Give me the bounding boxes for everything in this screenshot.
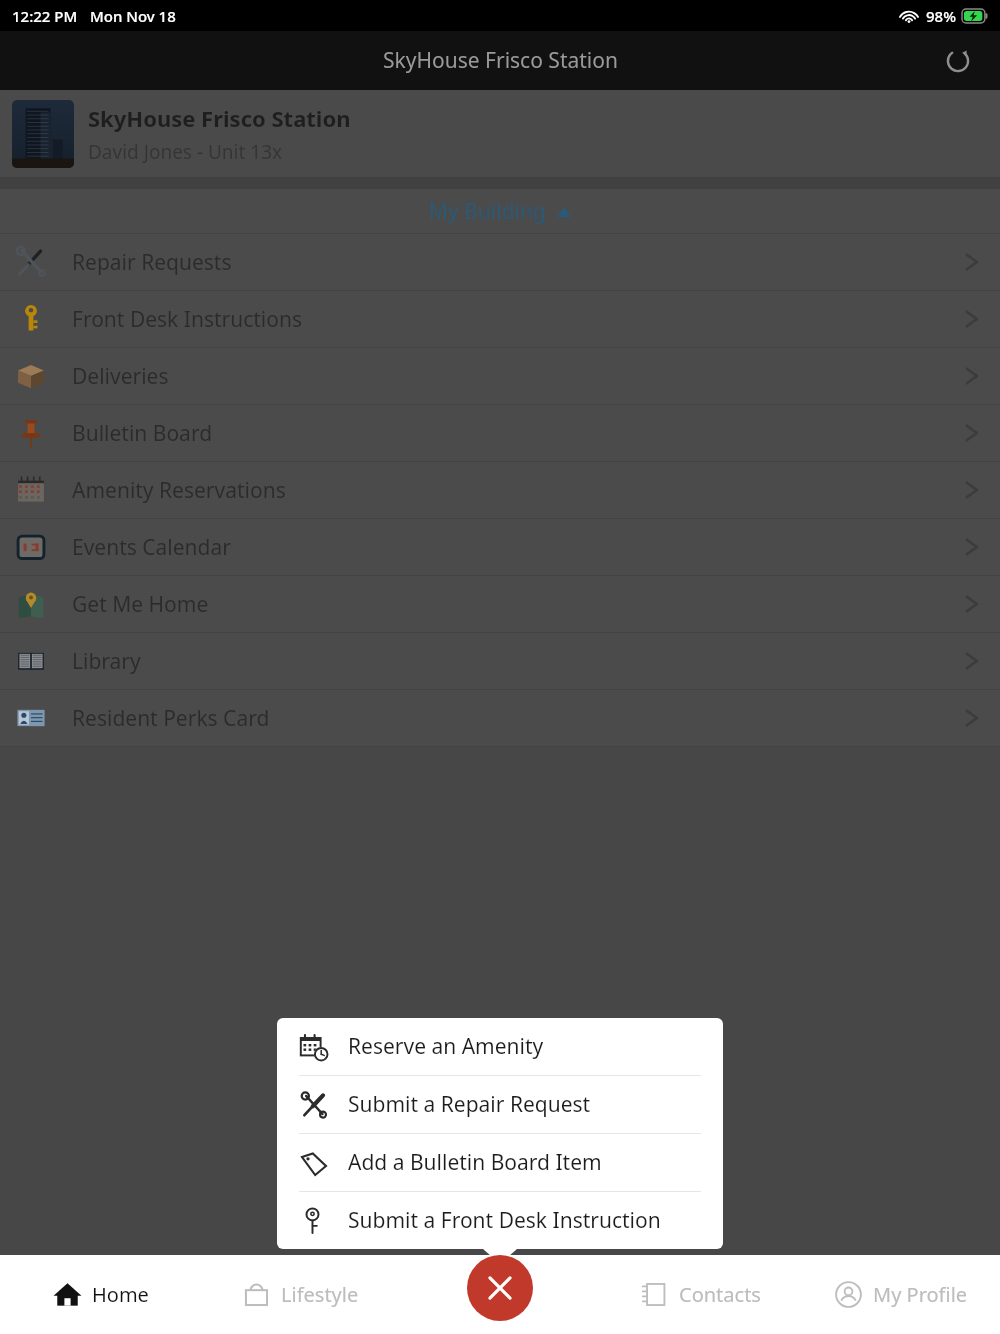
button[interactable]: Reserve an Amenity (277, 1018, 723, 1076)
button[interactable]: Resident Perks Card (0, 690, 1000, 747)
button[interactable]: Bulletin Board (0, 405, 1000, 462)
button[interactable]: Events Calendar (0, 519, 1000, 576)
button[interactable]: Library (0, 633, 1000, 690)
staticText: SkyHouse Frisco Station (88, 103, 351, 133)
staticText: David Jones - Unit 13x (88, 139, 283, 165)
staticText: Home (92, 1281, 149, 1308)
staticText: Add a Bulletin Board Item (348, 1148, 602, 1177)
staticText: Submit a Front Desk Instruction (348, 1206, 661, 1235)
button[interactable]: Contacts (600, 1255, 800, 1334)
staticText: Front Desk Instructions (72, 305, 302, 334)
button[interactable]: Get Me Home (0, 576, 1000, 633)
staticText: Mon Nov 18 (90, 6, 176, 26)
staticText: Library (72, 647, 141, 676)
button[interactable]: Close menu (467, 1255, 533, 1321)
staticText: My Building (429, 197, 546, 226)
staticText: Resident Perks Card (72, 704, 270, 733)
button[interactable]: Repair Requests (0, 234, 1000, 291)
staticText: Events Calendar (72, 533, 231, 562)
staticText: Get Me Home (72, 590, 209, 619)
button[interactable]: SkyHouse Frisco Station (0, 90, 1000, 177)
staticText: SkyHouse Frisco Station (383, 46, 618, 75)
button[interactable]: Lifestyle (200, 1255, 400, 1334)
staticText: Bulletin Board (72, 419, 213, 448)
staticText: Amenity Reservations (72, 476, 286, 505)
staticText: Deliveries (72, 362, 169, 391)
button[interactable]: Submit a Repair Request (277, 1076, 723, 1134)
staticText: Lifestyle (281, 1281, 359, 1308)
staticText: Submit a Repair Request (348, 1090, 591, 1119)
button[interactable]: Refresh (938, 41, 978, 81)
staticText: 12:22 PM (12, 6, 78, 26)
staticText: Repair Requests (72, 248, 232, 277)
button[interactable]: My Building (0, 189, 1000, 233)
button[interactable]: Deliveries (0, 348, 1000, 405)
staticText: Reserve an Amenity (348, 1032, 544, 1061)
button[interactable]: Front Desk Instructions (0, 291, 1000, 348)
button[interactable]: Add a Bulletin Board Item (277, 1134, 723, 1192)
staticText: My Profile (873, 1281, 968, 1308)
button[interactable]: My Profile (800, 1255, 1000, 1334)
staticText: 98% (926, 6, 956, 26)
button[interactable]: Submit a Front Desk Instruction (277, 1192, 723, 1249)
button[interactable]: Amenity Reservations (0, 462, 1000, 519)
staticText: Contacts (679, 1281, 761, 1308)
button[interactable]: Home (0, 1255, 200, 1334)
